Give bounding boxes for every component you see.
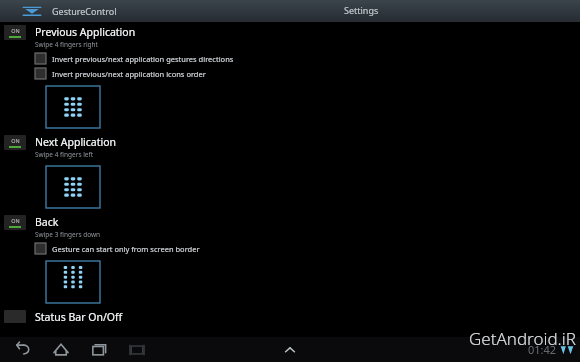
staticText: Gesture can start only from screen borde… [52,244,200,254]
staticText: ON [11,27,20,34]
button[interactable]: Recent apps [88,339,110,361]
button[interactable]: Invert previous/next application gesture… [35,53,234,64]
staticText: Back [35,215,59,229]
staticText: Next Application [35,135,117,149]
staticText: Swipe 3 fingers down [35,230,101,239]
button[interactable]: Home [50,339,72,361]
staticText: Invert previous/next application gesture… [52,54,234,64]
button[interactable]: Settings [143,0,580,22]
staticText: Swipe 4 fingers left [35,150,94,159]
staticText: Invert previous/next application icons o… [52,69,206,79]
button[interactable]: Invert previous/next application icons o… [35,68,206,79]
staticText: Settings [344,4,379,16]
button[interactable]: Gesture can start only from screen borde… [35,243,200,254]
button[interactable]: Toggle gesture on or off [0,215,580,239]
staticText: Swipe 4 fingers right [35,40,98,49]
staticText: Previous Application [35,25,136,39]
button[interactable]: Back [12,339,34,361]
button[interactable]: Toggle gesture on or off [0,135,580,159]
button[interactable]: Toggle gesture on or off [4,135,26,150]
staticText: Status Bar On/Off [35,310,123,324]
staticText: 01:42 [528,342,557,357]
button[interactable]: Status: clock and signal [528,342,574,357]
other: GestureControl logo [22,4,42,18]
button[interactable]: Expand [279,339,301,361]
staticText: ON [11,217,20,224]
staticText: GestureControl [52,5,117,17]
staticText: ON [11,137,20,144]
button[interactable]: Status Bar On/Off [0,310,580,324]
button[interactable]: Toggle gesture on or off [0,25,580,49]
button[interactable]: Toggle gesture on or off [4,215,26,230]
staticText: GetAndroid.iR [469,327,576,350]
button[interactable]: Toggle gesture on or off [4,25,26,40]
button[interactable]: Screenshot [126,339,148,361]
